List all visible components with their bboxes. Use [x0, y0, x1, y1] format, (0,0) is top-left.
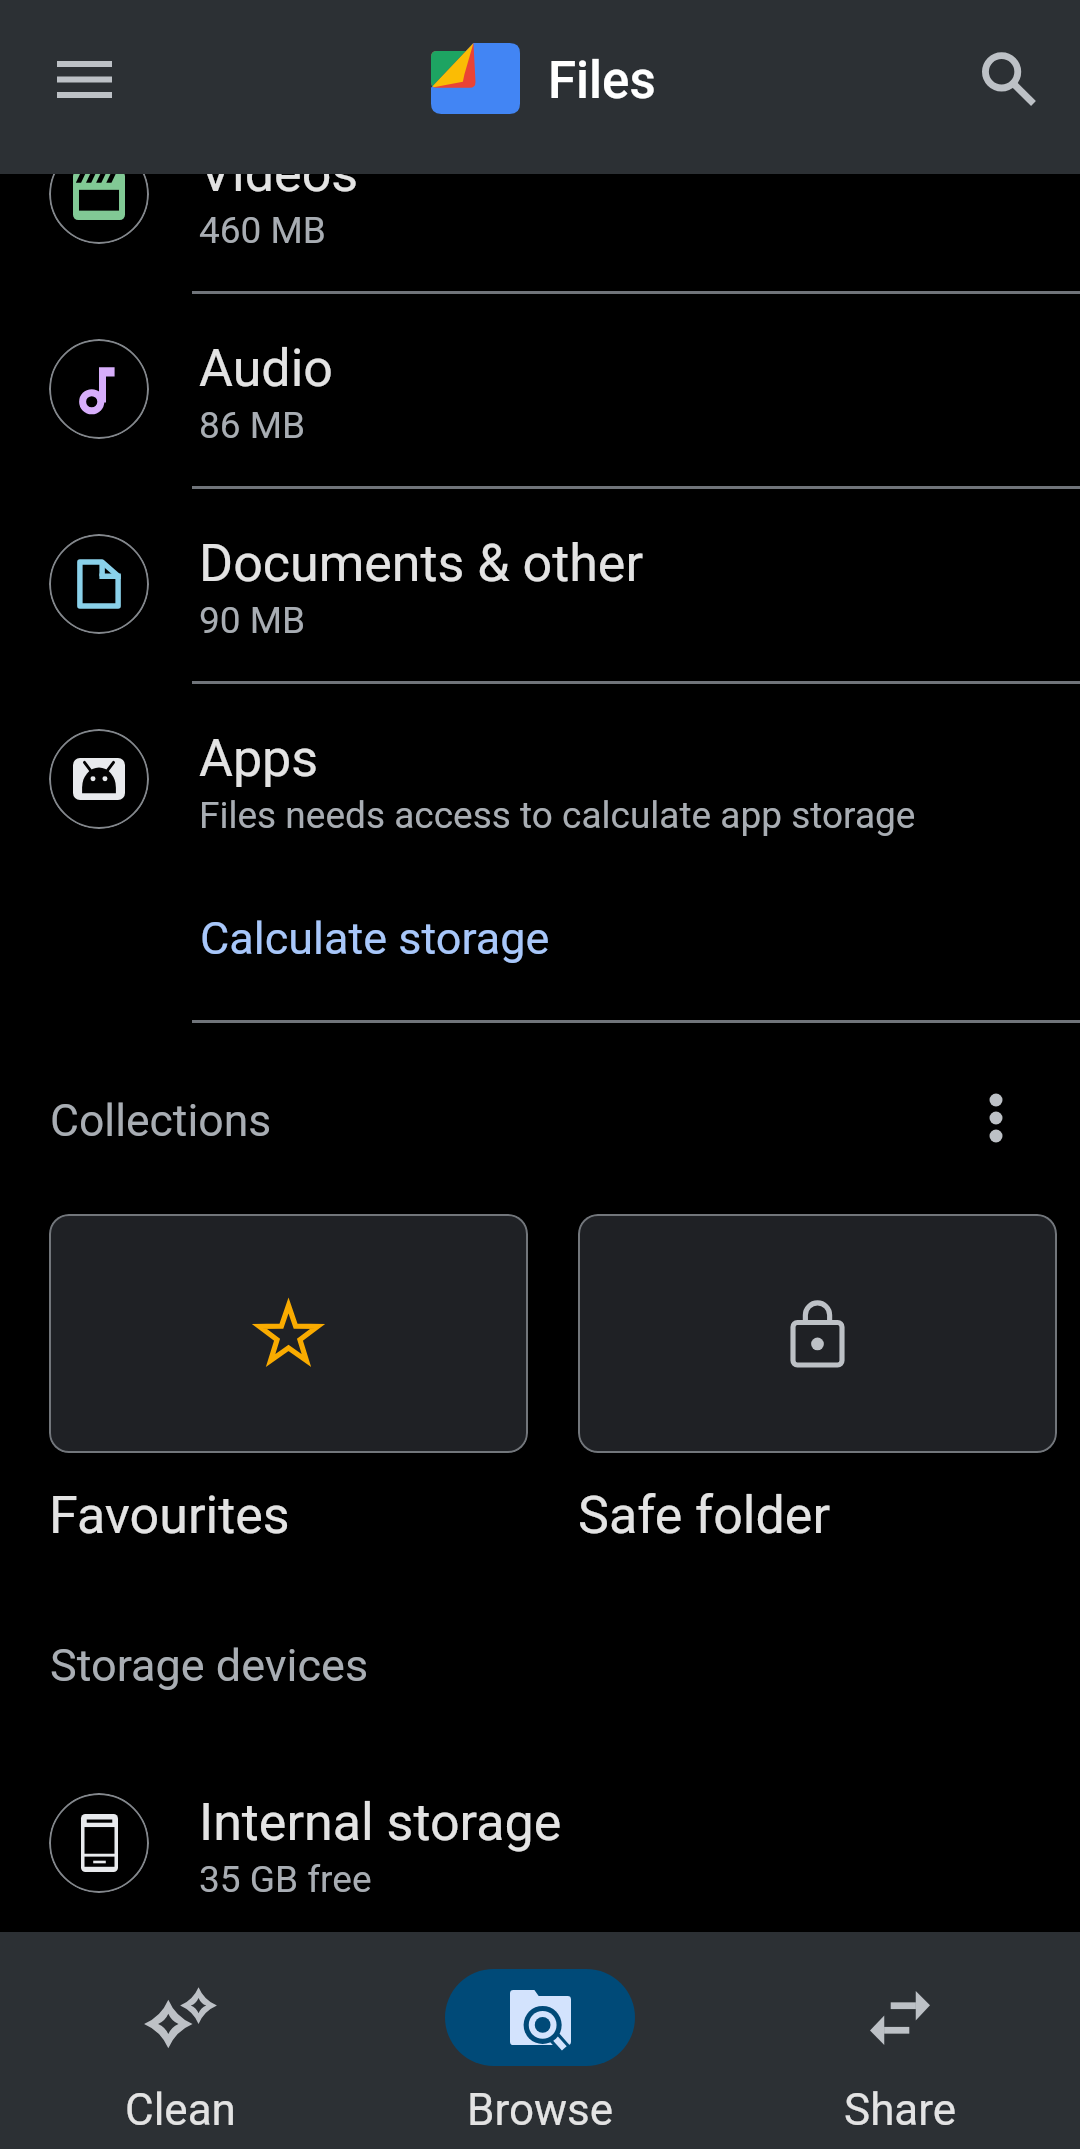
button[interactable]: Calculate storage	[176, 888, 574, 989]
staticText: Audio	[199, 338, 333, 399]
staticText: Collections	[50, 1095, 272, 1147]
button[interactable]: Audio	[0, 291, 1080, 483]
staticText: Storage devices	[50, 1639, 369, 1692]
staticText: Safe folder	[578, 1485, 831, 1546]
staticText: Internal storage	[199, 1792, 562, 1853]
button[interactable]: Apps	[0, 681, 1080, 873]
button[interactable]: Documents & other	[0, 486, 1080, 678]
staticText: Documents & other	[199, 533, 644, 594]
button[interactable]: Share	[720, 1932, 1080, 2136]
staticText: Clean	[125, 2084, 236, 2136]
button[interactable]: More options	[948, 1070, 1044, 1166]
staticText: Calculate storage	[200, 912, 550, 965]
button[interactable]: Safe folder	[578, 1214, 1057, 1546]
staticText: Favourites	[49, 1485, 290, 1546]
staticText: 35 GB free	[199, 1858, 372, 1901]
button[interactable]: Favourites	[49, 1214, 528, 1546]
staticText: Videos	[199, 143, 359, 204]
staticText: 86 MB	[199, 404, 306, 447]
staticText: 460 MB	[199, 209, 326, 252]
staticText: Browse	[467, 2084, 614, 2136]
button[interactable]: Browse	[360, 1932, 720, 2136]
staticText: 90 MB	[199, 599, 306, 642]
button[interactable]: Internal storage	[0, 1745, 1080, 1937]
staticText: Files needs access to calculate app stor…	[199, 794, 916, 837]
staticText: Files	[548, 51, 656, 111]
button[interactable]: Open navigation drawer	[24, 19, 144, 139]
button[interactable]: Search	[938, 22, 1068, 152]
staticText: Apps	[199, 728, 319, 789]
staticText: Share	[844, 2084, 957, 2136]
button[interactable]: Videos	[0, 96, 1080, 288]
button[interactable]: Clean	[0, 1932, 360, 2136]
